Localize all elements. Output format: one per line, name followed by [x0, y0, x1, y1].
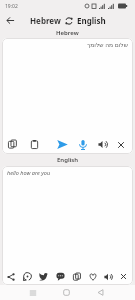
- button[interactable]: [73, 273, 81, 281]
- button[interactable]: [65, 17, 73, 25]
- button[interactable]: [98, 140, 107, 149]
- staticText: Hebrew: [56, 29, 79, 37]
- button[interactable]: [56, 272, 65, 281]
- button[interactable]: [57, 139, 68, 150]
- staticText: English: [57, 156, 79, 164]
- button[interactable]: [78, 140, 88, 150]
- button[interactable]: [23, 272, 32, 281]
- button[interactable]: [117, 141, 125, 149]
- button[interactable]: [89, 273, 97, 281]
- button[interactable]: [6, 16, 15, 25]
- button[interactable]: [120, 273, 127, 280]
- button[interactable]: [39, 272, 48, 281]
- button[interactable]: [97, 289, 104, 296]
- button[interactable]: [30, 140, 39, 149]
- button[interactable]: [29, 289, 37, 297]
- button[interactable]: [104, 273, 112, 281]
- button[interactable]: [63, 289, 70, 296]
- staticText: 19:02: [5, 3, 18, 10]
- staticText: hello how are you: [7, 169, 51, 176]
- staticText: שלום מה שלומך: [2, 41, 128, 49]
- button[interactable]: [7, 273, 15, 281]
- button[interactable]: [8, 140, 17, 149]
- button[interactable]: English: [77, 15, 106, 26]
- button[interactable]: Hebrew: [30, 15, 61, 26]
